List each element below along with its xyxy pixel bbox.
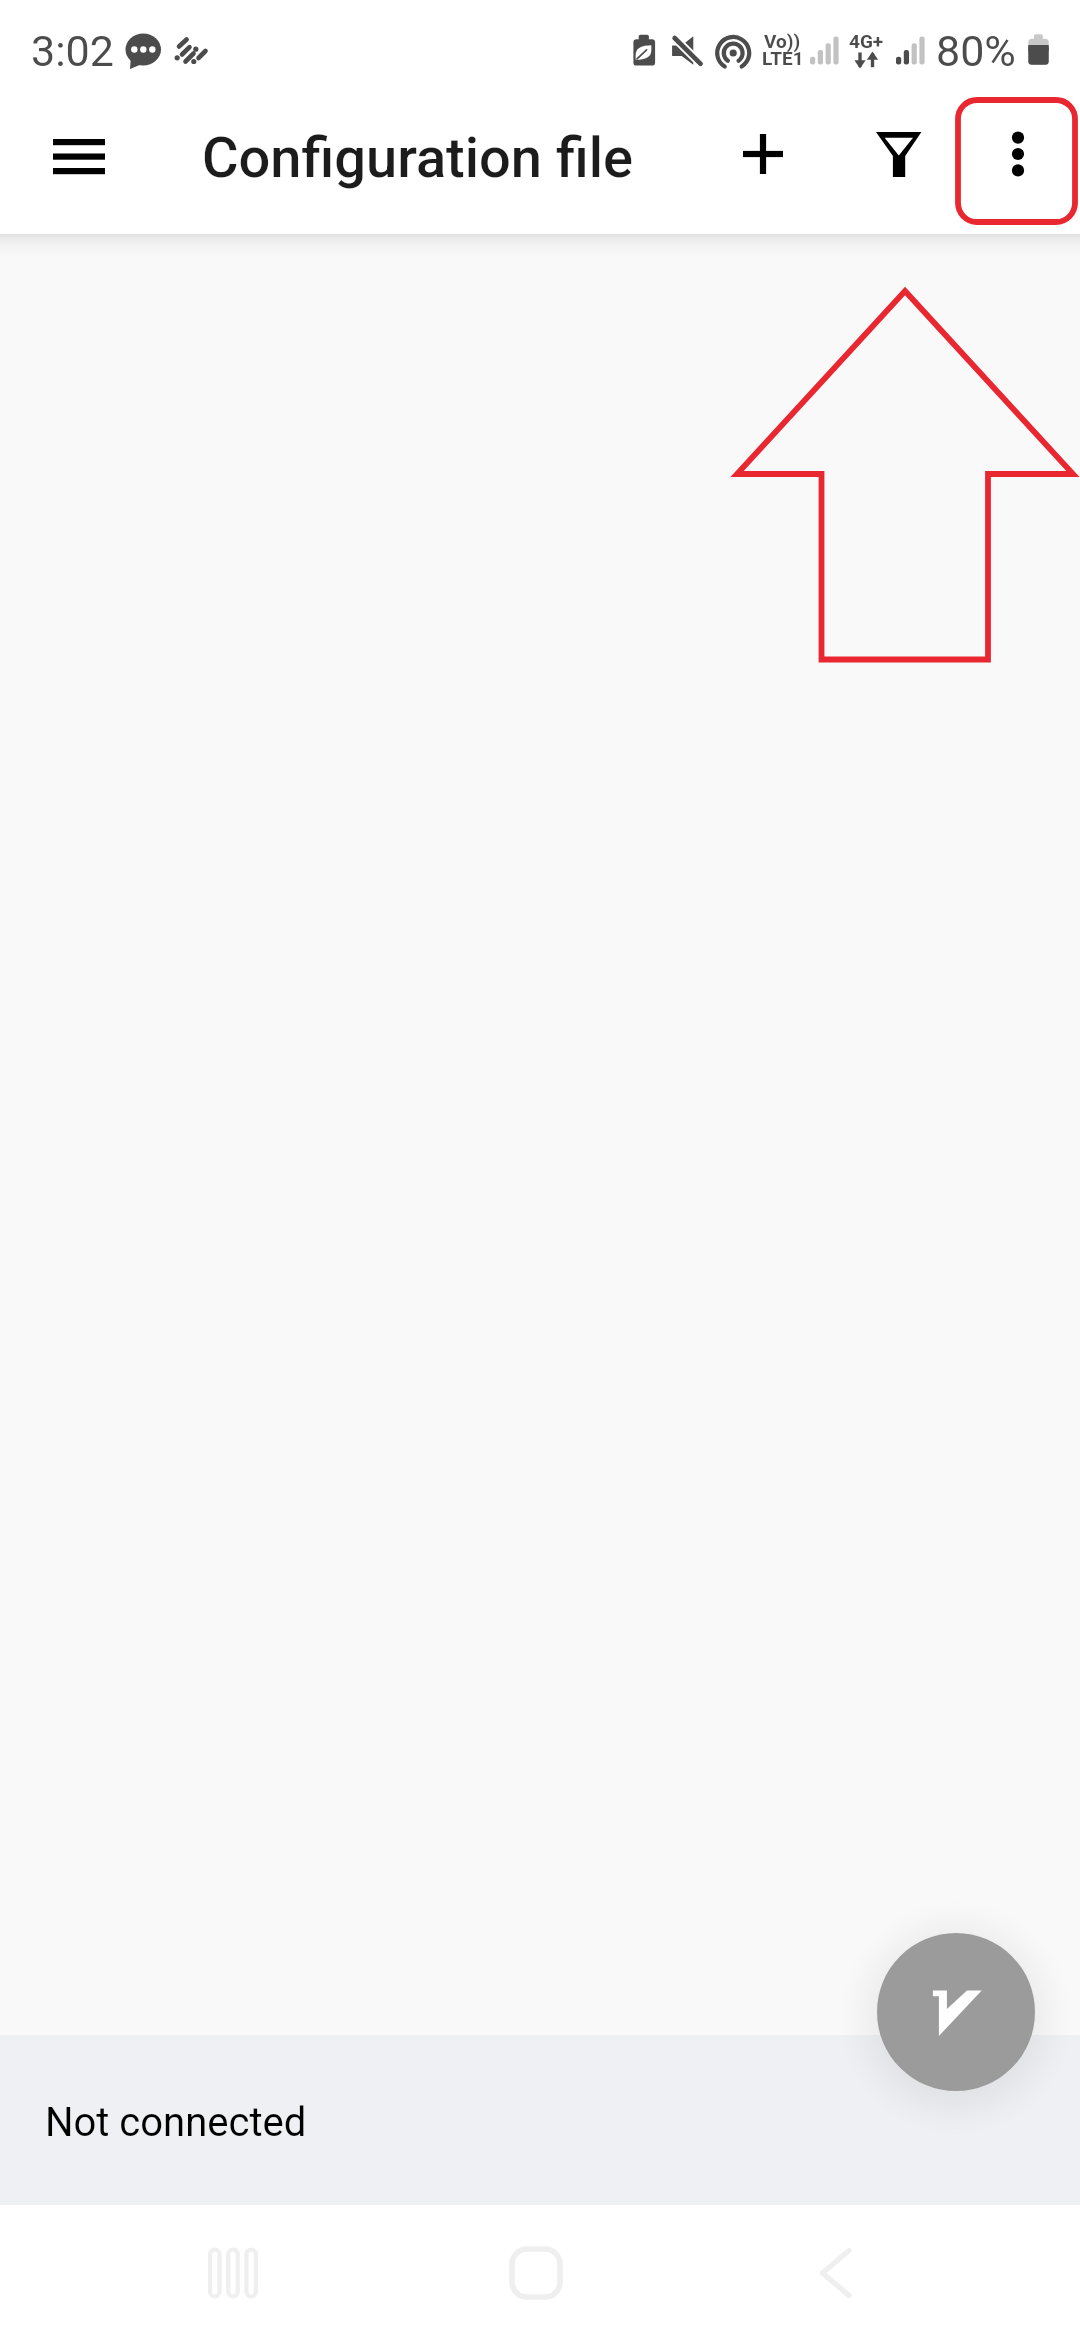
staticText: Vo)) — [764, 30, 801, 52]
staticText: Configuration file — [202, 125, 633, 191]
button[interactable]: Recent apps — [158, 2205, 308, 2340]
button[interactable]: Add configuration — [698, 96, 828, 212]
staticText: LTE1 — [762, 47, 804, 69]
staticText: 80% — [936, 26, 1016, 76]
staticText: 4G+ — [849, 30, 884, 52]
button[interactable]: Not connected — [0, 2035, 1080, 2205]
button[interactable]: More options — [953, 96, 1080, 212]
button[interactable]: Filter — [833, 96, 963, 212]
button[interactable]: Home — [461, 2205, 611, 2340]
button[interactable]: Connect VPN — [877, 1933, 1035, 2091]
button[interactable]: Open navigation drawer — [13, 96, 145, 216]
staticText: 3:02 — [31, 26, 114, 76]
staticText: Not connected — [45, 2099, 307, 2146]
